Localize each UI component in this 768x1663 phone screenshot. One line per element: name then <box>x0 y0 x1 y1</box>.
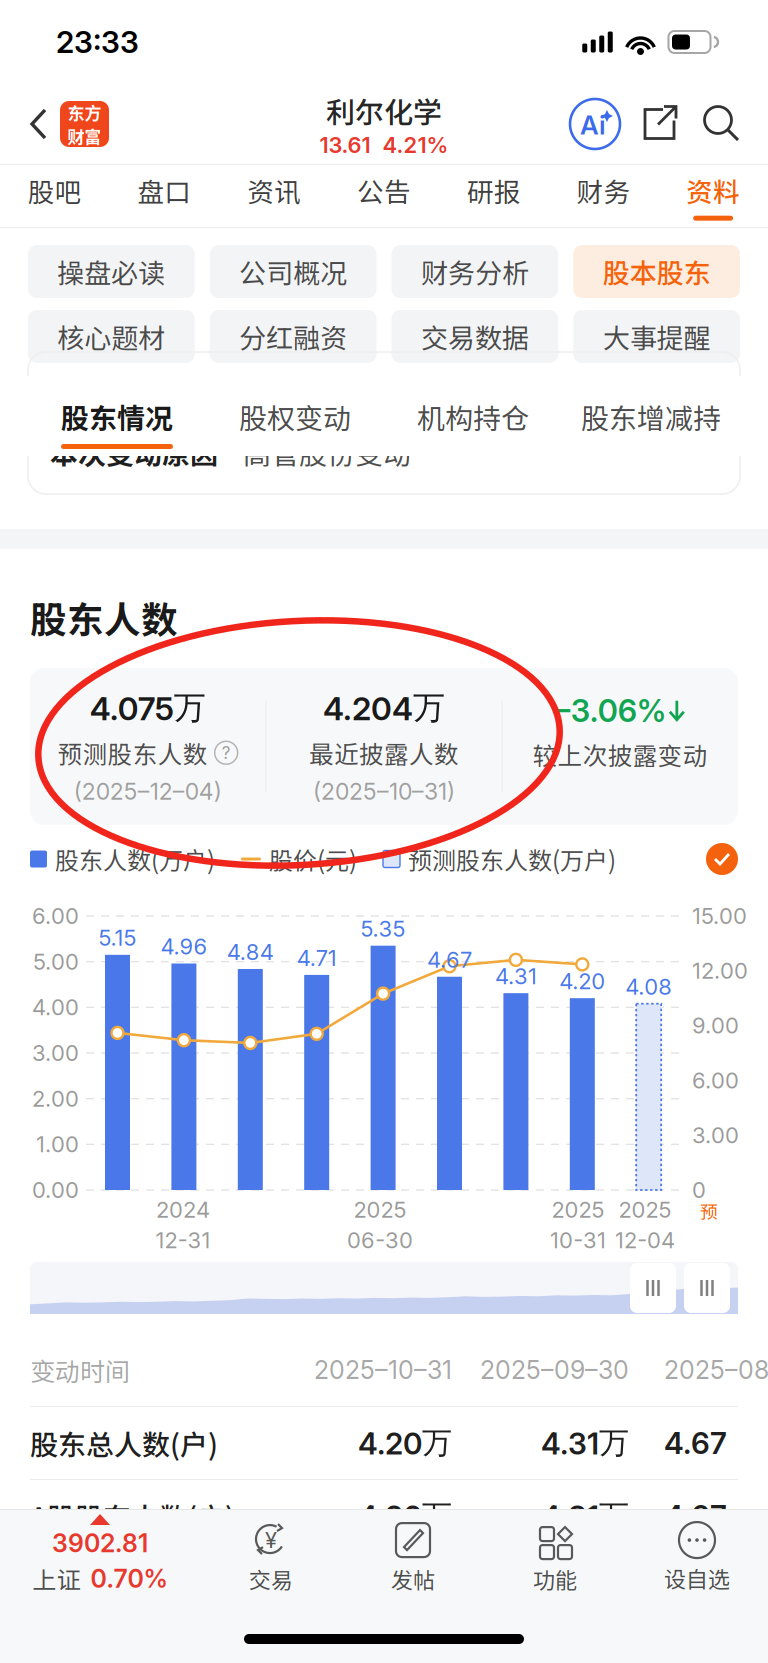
staticText: 上证 <box>32 1561 80 1596</box>
button[interactable]: 左滑块 <box>630 1263 676 1313</box>
button[interactable]: 财务分析 <box>391 245 558 298</box>
staticText: 资讯 <box>247 171 301 210</box>
staticText: 5.00 <box>33 948 79 975</box>
button[interactable]: 交易数据 <box>391 310 558 363</box>
staticText: 预 <box>700 1198 718 1224</box>
staticText: 1.00 <box>36 1131 79 1158</box>
button[interactable]: 资料 <box>658 165 768 227</box>
staticText: 机构持仓 <box>417 396 529 437</box>
staticText: 12.00 <box>692 957 748 984</box>
staticText: 0 <box>692 1177 706 1203</box>
staticText: 13.61 <box>319 132 370 158</box>
staticText: 股吧 <box>28 171 82 210</box>
staticText: 4.67 <box>664 1498 727 1534</box>
staticText: 股东增减持 <box>581 396 721 437</box>
staticText: 核心题材 <box>57 317 165 356</box>
staticText: 研报 <box>467 171 521 210</box>
staticText: 4.31 <box>495 963 537 989</box>
staticText: 财务 <box>576 171 630 210</box>
button[interactable]: 3902.81 <box>0 1510 200 1600</box>
button[interactable]: 公告 <box>329 165 439 227</box>
staticText: 变动时间 <box>30 1352 130 1388</box>
staticText: 利尔化学 <box>326 90 442 132</box>
button[interactable]: 股本股东 <box>573 245 740 298</box>
button[interactable]: 股东情况 <box>28 376 206 456</box>
button[interactable]: 机构持仓 <box>384 376 562 456</box>
button[interactable]: 研报 <box>439 165 549 227</box>
staticText: 9.00 <box>692 1012 739 1039</box>
button[interactable]: 分享 <box>642 103 680 144</box>
staticText: 5.35 <box>361 915 406 942</box>
button[interactable]: 股东增减持 <box>562 376 740 456</box>
button[interactable]: 盘口 <box>110 165 219 227</box>
staticText: 4.67 <box>664 1425 727 1461</box>
staticText: 分红融资 <box>239 317 347 356</box>
staticText: 发帖 <box>391 1563 435 1595</box>
staticText: A股股东人数(户) <box>30 1496 235 1536</box>
staticText: 交易 <box>249 1563 293 1595</box>
button[interactable]: 右滑块 <box>684 1263 730 1313</box>
staticText: 设自选 <box>664 1562 730 1594</box>
staticText: 4.204万 <box>323 688 445 728</box>
staticText: 2025 <box>353 1196 406 1223</box>
staticText: 4.71 <box>297 945 337 971</box>
staticText: 大事提醒 <box>603 317 711 356</box>
staticText: 4.20万 <box>358 1497 452 1535</box>
button[interactable]: 确认 <box>706 843 738 875</box>
button[interactable]: 分红融资 <box>210 310 376 363</box>
staticText: 股东人数(万户) <box>55 842 215 876</box>
button[interactable]: 发帖 <box>342 1510 484 1600</box>
button[interactable]: 资讯 <box>219 165 329 227</box>
staticText: 2025–08– <box>664 1355 768 1385</box>
staticText: Ai <box>580 109 606 141</box>
button[interactable]: 搜索 <box>702 104 742 144</box>
staticText: 4.21% <box>382 132 448 158</box>
staticText: 资料 <box>686 171 740 210</box>
button[interactable]: 公司概况 <box>210 245 376 298</box>
staticText: 5.15 <box>98 924 136 951</box>
staticText: 2024 <box>156 1196 210 1223</box>
staticText: 4.67 <box>427 946 472 973</box>
staticText: 3.00 <box>692 1122 739 1148</box>
staticText: 高管股份变动 <box>243 432 411 472</box>
staticText: (2025–10–31) <box>313 777 455 805</box>
staticText: 4.96 <box>160 933 207 960</box>
button[interactable]: 东方财富 <box>60 101 109 147</box>
staticText: 3902.81 <box>52 1528 148 1558</box>
staticText: 股本股东 <box>603 252 711 291</box>
staticText: 盘口 <box>138 171 192 210</box>
staticText: 股价(元) <box>269 842 357 876</box>
staticText: 股东人数 <box>30 591 178 644</box>
button[interactable]: 操盘必读 <box>28 245 195 298</box>
staticText: 股权变动 <box>239 396 351 437</box>
staticText: 06-30 <box>347 1227 413 1254</box>
button[interactable]: 功能 <box>484 1510 626 1600</box>
staticText: 预测股东人数(万户) <box>408 842 616 876</box>
staticText: 4.20 <box>559 968 605 994</box>
staticText: 2.00 <box>32 1085 79 1112</box>
staticText: 功能 <box>533 1563 577 1595</box>
staticText: –3.06% <box>555 692 667 729</box>
button[interactable]: 股权变动 <box>206 376 384 456</box>
staticText: 公告 <box>357 171 411 210</box>
staticText: 东方 <box>67 100 101 124</box>
staticText: ¥ <box>265 1527 277 1553</box>
button[interactable]: 设自选 <box>626 1510 768 1600</box>
staticText: (2025–12–04) <box>74 777 222 805</box>
staticText: 股东情况 <box>61 396 173 437</box>
button[interactable]: 财务 <box>549 165 658 227</box>
staticText: 3.00 <box>32 1040 79 1066</box>
staticText: 12-31 <box>155 1227 210 1254</box>
button[interactable]: 核心题材 <box>28 310 195 363</box>
staticText: 财务分析 <box>421 252 529 291</box>
button[interactable]: 返回 <box>18 91 60 157</box>
button[interactable]: AI 助手 <box>570 99 620 149</box>
staticText: 最近披露人数 <box>309 735 459 770</box>
button[interactable]: ¥ <box>200 1510 342 1600</box>
staticText: 2025 <box>551 1196 604 1223</box>
staticText: 公司概况 <box>239 252 347 291</box>
staticText: 6.00 <box>32 903 79 929</box>
button[interactable]: 股吧 <box>0 165 110 227</box>
staticText: 0.00 <box>32 1177 79 1203</box>
button[interactable]: 大事提醒 <box>573 310 740 363</box>
